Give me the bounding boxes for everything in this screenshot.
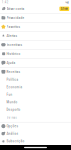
- staticText: Ativar conta: [7, 7, 25, 11]
- staticText: Ajuda: [7, 61, 16, 65]
- staticText: Ver mais: [7, 116, 17, 119]
- staticText: Desporto: [7, 108, 21, 111]
- button[interactable]: Histórico: [0, 49, 71, 58]
- staticText: Subscrição: [7, 139, 25, 143]
- button[interactable]: Privacidade: [0, 13, 71, 22]
- button[interactable]: Fun: [0, 91, 71, 98]
- button[interactable]: Subscrição: [0, 137, 71, 145]
- button[interactable]: Incentivos: [0, 40, 71, 49]
- staticText: Privacidade: [7, 16, 25, 20]
- staticText: Receitas: [7, 70, 21, 74]
- button[interactable]: Ajuda: [0, 58, 71, 67]
- staticText: Incentivos: [7, 43, 23, 47]
- staticText: Análise: [7, 132, 19, 136]
- button[interactable]: Política: [0, 76, 71, 83]
- button[interactable]: Ver mais: [0, 113, 71, 122]
- button[interactable]: Análise: [0, 130, 71, 137]
- staticText: Mundo: [7, 100, 18, 104]
- staticText: Ativar: [61, 7, 68, 11]
- staticText: Fun: [7, 93, 13, 97]
- staticText: Política: [7, 78, 19, 82]
- button[interactable]: Opções: [0, 122, 71, 130]
- staticText: Alertas: [7, 34, 18, 38]
- button[interactable]: Mundo: [0, 98, 71, 106]
- staticText: Favoritos: [7, 25, 21, 29]
- staticText: Economia: [7, 85, 23, 89]
- staticText: ▾▴▮: [65, 0, 69, 4]
- button[interactable]: Favoritos: [0, 22, 71, 31]
- staticText: Opções: [7, 124, 19, 128]
- button[interactable]: Desporto: [0, 106, 71, 113]
- button[interactable]: Alertas: [0, 31, 71, 40]
- button[interactable]: Ativar: [59, 7, 69, 11]
- staticText: 1:42: [2, 0, 9, 4]
- button[interactable]: Economia: [0, 83, 71, 91]
- staticText: Histórico: [7, 52, 21, 56]
- button[interactable]: Receitas: [0, 67, 71, 76]
